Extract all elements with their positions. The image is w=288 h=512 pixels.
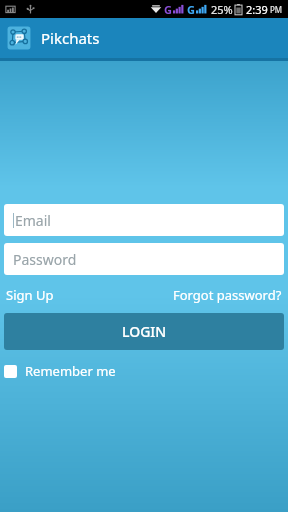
staticText: Forgot password? xyxy=(173,286,282,304)
staticText: Password xyxy=(13,250,77,269)
button[interactable]: Forgot password? xyxy=(171,284,284,306)
staticText: Pikchats xyxy=(41,28,100,48)
staticText: PM xyxy=(270,4,283,15)
button[interactable]: Remember me xyxy=(4,359,124,383)
staticText: G xyxy=(164,2,172,17)
button[interactable]: LOGIN xyxy=(4,313,284,350)
staticText: Sign Up xyxy=(6,286,54,304)
button[interactable]: Sign Up xyxy=(4,284,56,306)
staticText: Remember me xyxy=(25,362,116,380)
button[interactable]: Password xyxy=(4,243,284,275)
staticText: G xyxy=(187,2,195,17)
other: Pikchats logo xyxy=(6,25,32,51)
staticText: Email xyxy=(15,211,51,230)
button[interactable]: Email xyxy=(4,204,284,236)
staticText: 25% xyxy=(211,2,233,17)
staticText: LOGIN xyxy=(122,322,167,341)
staticText: 2:39 xyxy=(246,2,268,17)
